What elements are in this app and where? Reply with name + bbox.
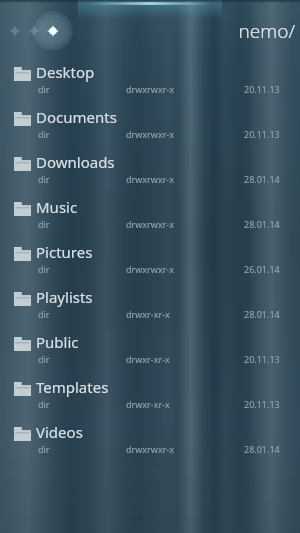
staticText: drwxrwxr-x: [126, 443, 175, 455]
staticText: Public: [36, 332, 79, 352]
staticText: dir: [38, 353, 50, 365]
staticText: Desktop: [36, 62, 95, 82]
staticText: drwxr-xr-x: [126, 308, 170, 320]
staticText: drwxrwxr-x: [126, 263, 175, 275]
staticText: Documents: [36, 107, 117, 127]
button[interactable]: Pictures: [0, 238, 300, 283]
staticText: Pictures: [36, 242, 93, 262]
staticText: 20.11.13: [244, 83, 280, 95]
staticText: 28.01.14: [244, 443, 280, 455]
staticText: 20.11.13: [244, 398, 280, 410]
staticText: dir: [38, 398, 50, 410]
staticText: 20.11.13: [244, 128, 280, 140]
staticText: 28.01.14: [244, 173, 280, 185]
button[interactable]: Playlists: [0, 283, 300, 328]
staticText: Videos: [36, 422, 83, 442]
staticText: 26.01.14: [244, 263, 280, 275]
button[interactable]: Menu: [44, 22, 62, 40]
staticText: dir: [38, 83, 50, 95]
staticText: drwxrwxr-x: [126, 128, 175, 140]
button[interactable]: Downloads: [0, 148, 300, 193]
staticText: drwxrwxr-x: [126, 83, 175, 95]
staticText: 20.11.13: [244, 353, 280, 365]
staticText: drwxr-xr-x: [126, 398, 170, 410]
staticText: drwxr-xr-x: [126, 353, 170, 365]
button[interactable]: Music: [0, 193, 300, 238]
staticText: dir: [38, 218, 50, 230]
staticText: drwxrwxr-x: [126, 218, 175, 230]
button[interactable]: Videos: [0, 418, 300, 463]
staticText: Music: [36, 197, 78, 217]
staticText: dir: [38, 173, 50, 185]
staticText: 28.01.14: [244, 308, 280, 320]
button[interactable]: Desktop: [0, 58, 300, 103]
staticText: dir: [38, 128, 50, 140]
staticText: dir: [38, 263, 50, 275]
staticText: Downloads: [36, 152, 115, 172]
staticText: Templates: [36, 377, 109, 397]
button[interactable]: Templates: [0, 373, 300, 418]
staticText: Playlists: [36, 287, 93, 307]
staticText: dir: [38, 443, 50, 455]
button[interactable]: Documents: [0, 103, 300, 148]
staticText: 28.01.14: [244, 218, 280, 230]
staticText: dir: [38, 308, 50, 320]
button[interactable]: nemo/: [225, 18, 295, 44]
button[interactable]: Search: [25, 22, 43, 40]
button[interactable]: Shortcuts: [6, 22, 24, 40]
staticText: drwxrwxr-x: [126, 173, 175, 185]
button[interactable]: Public: [0, 328, 300, 373]
